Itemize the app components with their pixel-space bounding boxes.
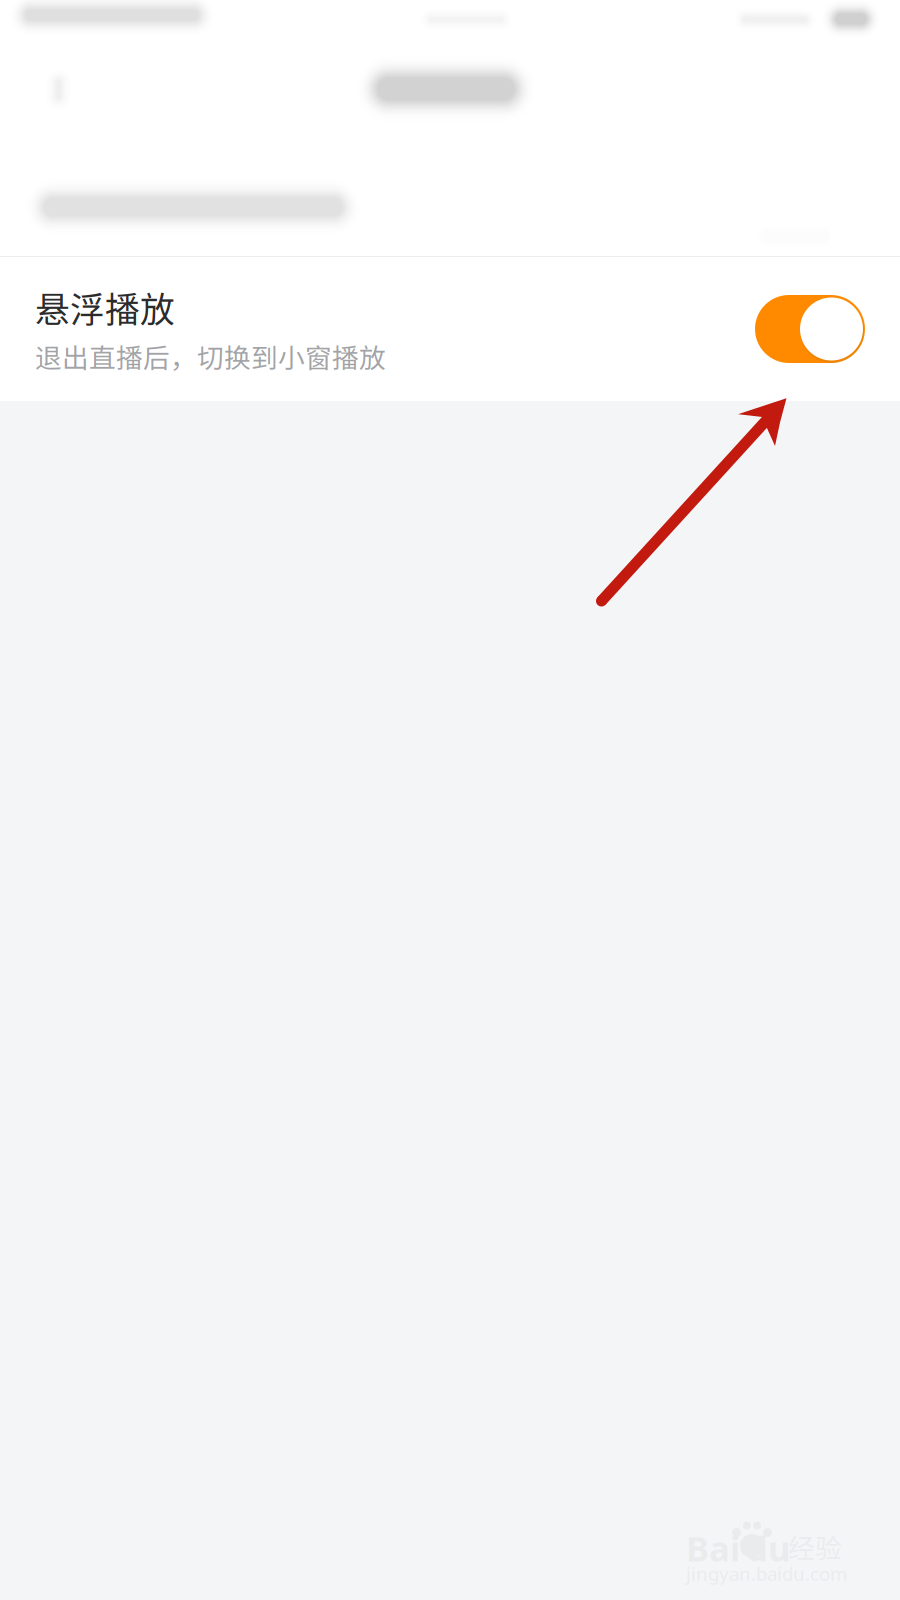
staticText: jingyan.baidu.com: [686, 1561, 847, 1586]
staticText: 经验: [788, 1527, 842, 1566]
staticText: Bai: [686, 1525, 740, 1571]
staticText: 退出直播后，切换到小窗播放: [35, 337, 386, 375]
staticText: du: [746, 1525, 791, 1571]
staticText: 悬浮播放: [35, 283, 175, 333]
button[interactable]: 悬浮播放: [0, 257, 900, 401]
